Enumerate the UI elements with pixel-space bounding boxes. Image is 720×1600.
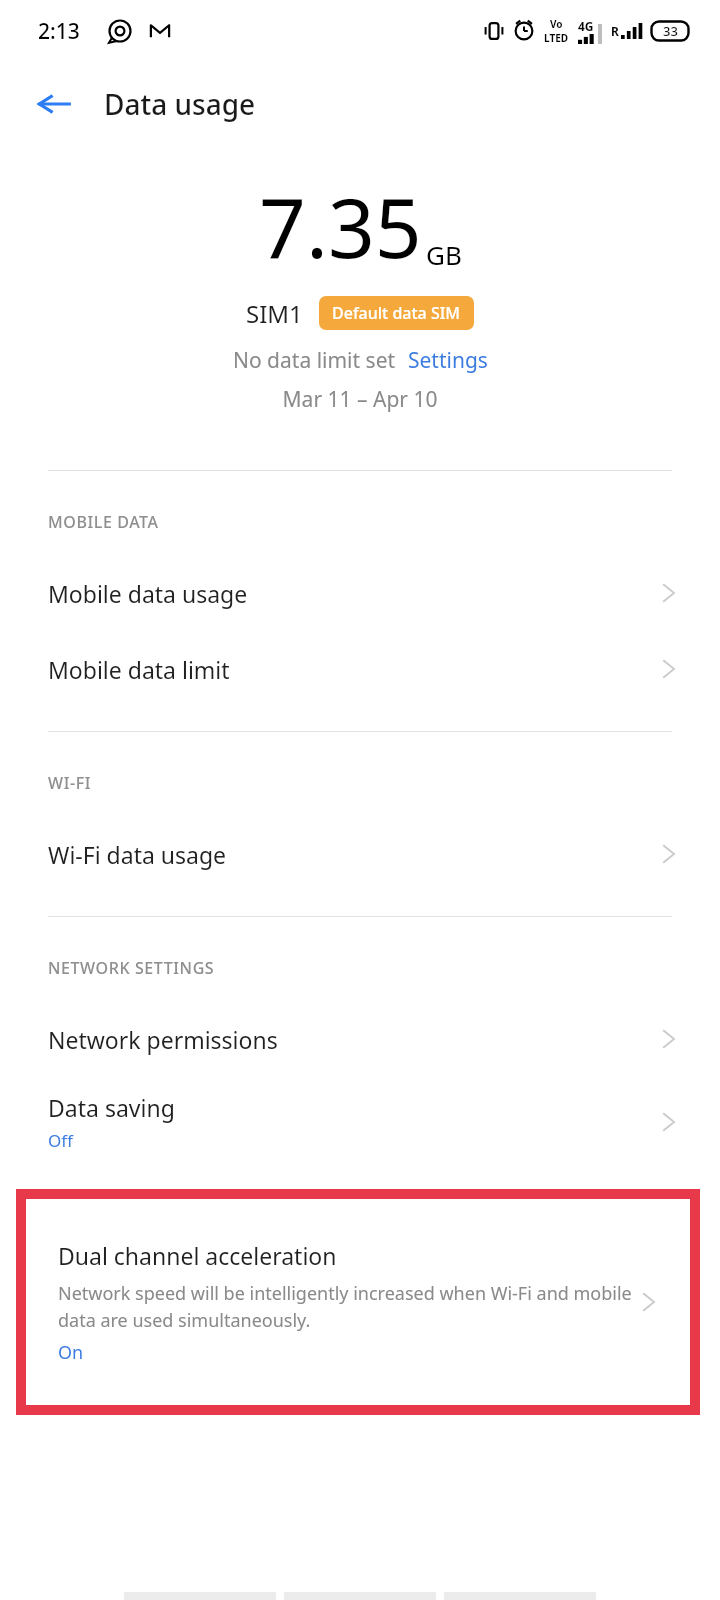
staticText: Network permissions	[48, 1024, 278, 1055]
staticText: 33	[663, 22, 678, 40]
staticText: R	[611, 23, 619, 39]
staticText: No data limit set	[233, 346, 396, 375]
button[interactable]: Mobile data limit	[0, 631, 720, 707]
button[interactable]: Mobile data usage	[0, 555, 720, 631]
staticText: Mobile data limit	[48, 654, 230, 685]
button[interactable]: Wi-Fi data usage	[0, 816, 720, 892]
staticText: On	[58, 1340, 84, 1365]
staticText: Wi-Fi data usage	[48, 839, 227, 870]
staticText: Dual channel acceleration	[58, 1240, 337, 1271]
staticText: MOBILE DATA	[48, 511, 159, 533]
staticText: Default data SIM	[332, 302, 461, 324]
staticText: 4G	[578, 18, 594, 34]
button[interactable]: Network permissions	[0, 1001, 720, 1077]
staticText: 7.35	[259, 170, 422, 282]
staticText: 2:13	[38, 17, 80, 46]
staticText: LTED	[544, 31, 569, 45]
staticText: Mar 11 – Apr 10	[0, 385, 720, 414]
staticText: WI-FI	[48, 772, 91, 794]
staticText: Data saving	[48, 1092, 175, 1123]
staticText: Network speed will be intelligently incr…	[58, 1281, 634, 1332]
button[interactable]: Data saving	[0, 1077, 720, 1167]
staticText: Off	[48, 1129, 73, 1152]
button[interactable]: Dual channel acceleration	[26, 1199, 690, 1405]
button[interactable]: Settings	[408, 346, 488, 375]
button[interactable]: Default data SIM	[319, 296, 474, 330]
staticText: SIM1	[246, 297, 303, 330]
staticText: Vo	[550, 17, 563, 31]
staticText: Mobile data usage	[48, 578, 248, 609]
button[interactable]: Back	[26, 76, 82, 132]
staticText: Settings	[408, 346, 488, 375]
staticText: Data usage	[104, 85, 256, 123]
staticText: NETWORK SETTINGS	[48, 957, 215, 979]
staticText: GB	[426, 237, 462, 272]
